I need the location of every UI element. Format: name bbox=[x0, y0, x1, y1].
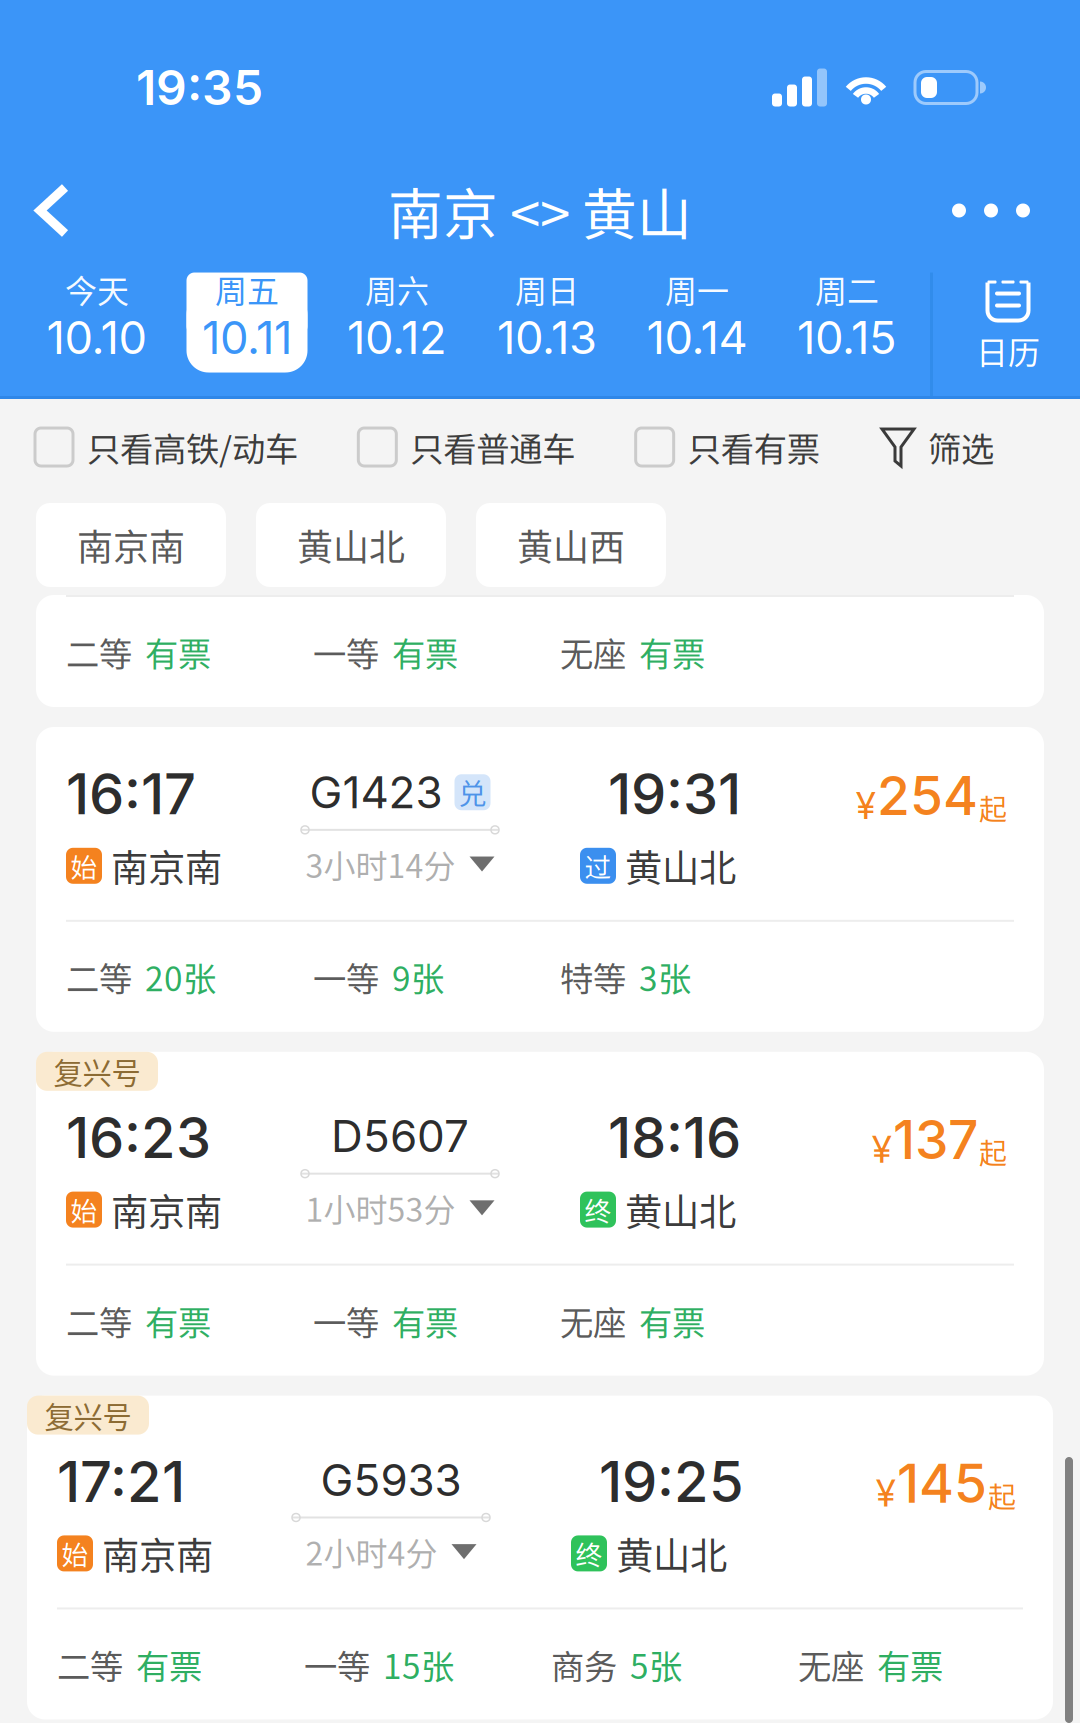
staticText: 9张 bbox=[392, 953, 444, 1001]
staticText: 过 bbox=[584, 846, 611, 885]
button[interactable]: 只看高铁/动车 bbox=[35, 423, 298, 471]
staticText: 有票 bbox=[136, 1640, 202, 1689]
staticText: 15张 bbox=[383, 1640, 454, 1689]
staticText: 16:17 bbox=[66, 760, 196, 828]
staticText: 10.14 bbox=[646, 310, 747, 365]
staticText: 商务 bbox=[551, 1640, 617, 1689]
button[interactable]: 今天 bbox=[22, 272, 172, 396]
staticText: 有票 bbox=[392, 1296, 458, 1345]
staticText: 一等 bbox=[304, 1640, 370, 1689]
button[interactable]: 周二 bbox=[772, 272, 922, 396]
staticText: 有票 bbox=[145, 1296, 211, 1345]
staticText: 周六 bbox=[365, 266, 429, 312]
staticText: 只看有票 bbox=[688, 423, 820, 471]
button[interactable]: Calendar bbox=[933, 272, 1080, 396]
staticText: 19:25 bbox=[599, 1448, 744, 1515]
staticText: 二等 bbox=[66, 953, 132, 1001]
button[interactable]: 复兴号 bbox=[36, 1052, 1044, 1376]
staticText: 二等 bbox=[66, 1296, 132, 1345]
staticText: 10.11 bbox=[202, 310, 292, 365]
staticText: 一等 bbox=[313, 1296, 379, 1345]
staticText: 137 bbox=[893, 1107, 978, 1172]
staticText: 只看普通车 bbox=[410, 423, 575, 471]
button[interactable]: 只看普通车 bbox=[358, 423, 575, 471]
staticText: 周一 bbox=[665, 266, 729, 312]
staticText: 复兴号 bbox=[44, 1394, 131, 1436]
staticText: 南京南 bbox=[77, 519, 185, 571]
button[interactable]: 周日 bbox=[472, 272, 622, 396]
staticText: 无座 bbox=[560, 1296, 626, 1345]
button[interactable]: More options bbox=[912, 155, 1080, 265]
staticText: 16:23 bbox=[66, 1104, 211, 1172]
staticText: 周日 bbox=[515, 266, 579, 312]
staticText: G1423 bbox=[309, 766, 442, 819]
staticText: 有票 bbox=[639, 628, 705, 676]
staticText: 黄山北 bbox=[625, 839, 736, 893]
staticText: 18:16 bbox=[608, 1104, 741, 1172]
staticText: 今天 bbox=[65, 266, 129, 312]
staticText: 黄山北 bbox=[297, 519, 405, 571]
staticText: 有票 bbox=[877, 1640, 943, 1689]
staticText: ¥ bbox=[856, 783, 876, 828]
staticText: 10.12 bbox=[347, 310, 447, 365]
staticText: 20张 bbox=[145, 953, 216, 1001]
staticText: 一等 bbox=[313, 628, 379, 676]
staticText: 南京南 bbox=[111, 1183, 222, 1237]
staticText: 3小时14分 bbox=[305, 841, 455, 887]
staticText: 无座 bbox=[560, 628, 626, 676]
staticText: 终 bbox=[584, 1190, 611, 1229]
staticText: 起 bbox=[988, 1475, 1016, 1515]
staticText: 南京南 bbox=[102, 1526, 213, 1580]
staticText: 终 bbox=[575, 1534, 602, 1573]
staticText: 复兴号 bbox=[53, 1050, 140, 1093]
button[interactable]: 16:17 bbox=[36, 727, 1044, 1032]
staticText: ¥ bbox=[872, 1127, 892, 1172]
staticText: 19:31 bbox=[608, 760, 741, 828]
staticText: 3张 bbox=[639, 953, 691, 1001]
staticText: 二等 bbox=[57, 1640, 123, 1689]
staticText: 始 bbox=[70, 1190, 97, 1229]
staticText: 145 bbox=[897, 1451, 987, 1515]
staticText: 2小时4分 bbox=[305, 1528, 437, 1575]
button[interactable]: 周六 bbox=[322, 272, 472, 396]
button[interactable]: 黄山西 bbox=[476, 503, 666, 587]
staticText: 17:21 bbox=[57, 1448, 185, 1515]
staticText: 254 bbox=[877, 763, 978, 828]
button[interactable]: 周一 bbox=[622, 272, 772, 396]
staticText: 特等 bbox=[560, 953, 626, 1001]
staticText: 起 bbox=[979, 1131, 1007, 1172]
staticText: 黄山北 bbox=[625, 1183, 736, 1237]
staticText: 二等 bbox=[66, 628, 132, 676]
staticText: 一等 bbox=[313, 953, 379, 1001]
staticText: 10.15 bbox=[797, 310, 897, 365]
staticText: 5张 bbox=[630, 1640, 682, 1689]
staticText: 兑 bbox=[458, 772, 486, 812]
staticText: 黄山北 bbox=[616, 1526, 727, 1580]
staticText: D5607 bbox=[331, 1109, 469, 1163]
staticText: 无座 bbox=[798, 1640, 864, 1689]
button[interactable]: Back bbox=[0, 155, 114, 265]
staticText: 周二 bbox=[815, 266, 879, 312]
staticText: 筛选 bbox=[928, 423, 994, 471]
staticText: 南京 <> 黄山 bbox=[388, 171, 692, 250]
staticText: 始 bbox=[61, 1534, 88, 1573]
staticText: 1小时53分 bbox=[305, 1185, 455, 1231]
staticText: 有票 bbox=[639, 1296, 705, 1345]
staticText: 10.10 bbox=[46, 310, 147, 365]
staticText: G5933 bbox=[320, 1453, 461, 1506]
staticText: 只看高铁/动车 bbox=[87, 423, 298, 471]
staticText: 黄山西 bbox=[517, 519, 625, 571]
staticText: 日历 bbox=[976, 327, 1040, 374]
button[interactable]: 只看有票 bbox=[636, 423, 820, 471]
staticText: 19:35 bbox=[136, 58, 263, 117]
button[interactable]: 筛选 bbox=[880, 423, 994, 471]
button[interactable]: 南京南 bbox=[36, 503, 226, 587]
button[interactable]: 黄山北 bbox=[256, 503, 446, 587]
staticText: 有票 bbox=[392, 628, 458, 676]
staticText: ¥ bbox=[876, 1470, 896, 1516]
button[interactable]: 周五 bbox=[172, 272, 322, 396]
staticText: 南京南 bbox=[111, 839, 222, 893]
staticText: 10.13 bbox=[497, 310, 597, 365]
button[interactable]: 复兴号 bbox=[27, 1396, 1053, 1719]
staticText: 起 bbox=[979, 787, 1007, 828]
